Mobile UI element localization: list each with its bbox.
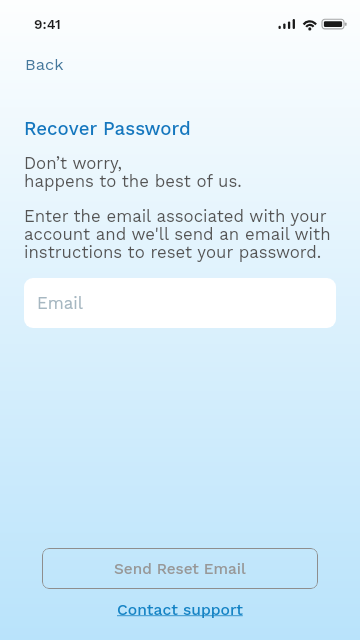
- staticText: Email: [37, 293, 83, 313]
- staticText: Don’t worry, happens to the best of us.: [24, 153, 242, 191]
- staticText: Recover Password: [24, 118, 191, 140]
- button[interactable]: Email: [24, 278, 336, 328]
- staticText: Contact support: [117, 600, 243, 618]
- button[interactable]: Back: [14, 47, 75, 82]
- staticText: Send Reset Email: [114, 560, 246, 578]
- other: Signal, Wi-Fi and battery status: [276, 14, 350, 32]
- button[interactable]: Send Reset Email: [42, 548, 318, 589]
- staticText: Back: [25, 55, 64, 74]
- button[interactable]: Contact support: [0, 596, 360, 622]
- staticText: Enter the email associated with your acc…: [24, 206, 336, 262]
- staticText: 9:41: [34, 16, 61, 32]
